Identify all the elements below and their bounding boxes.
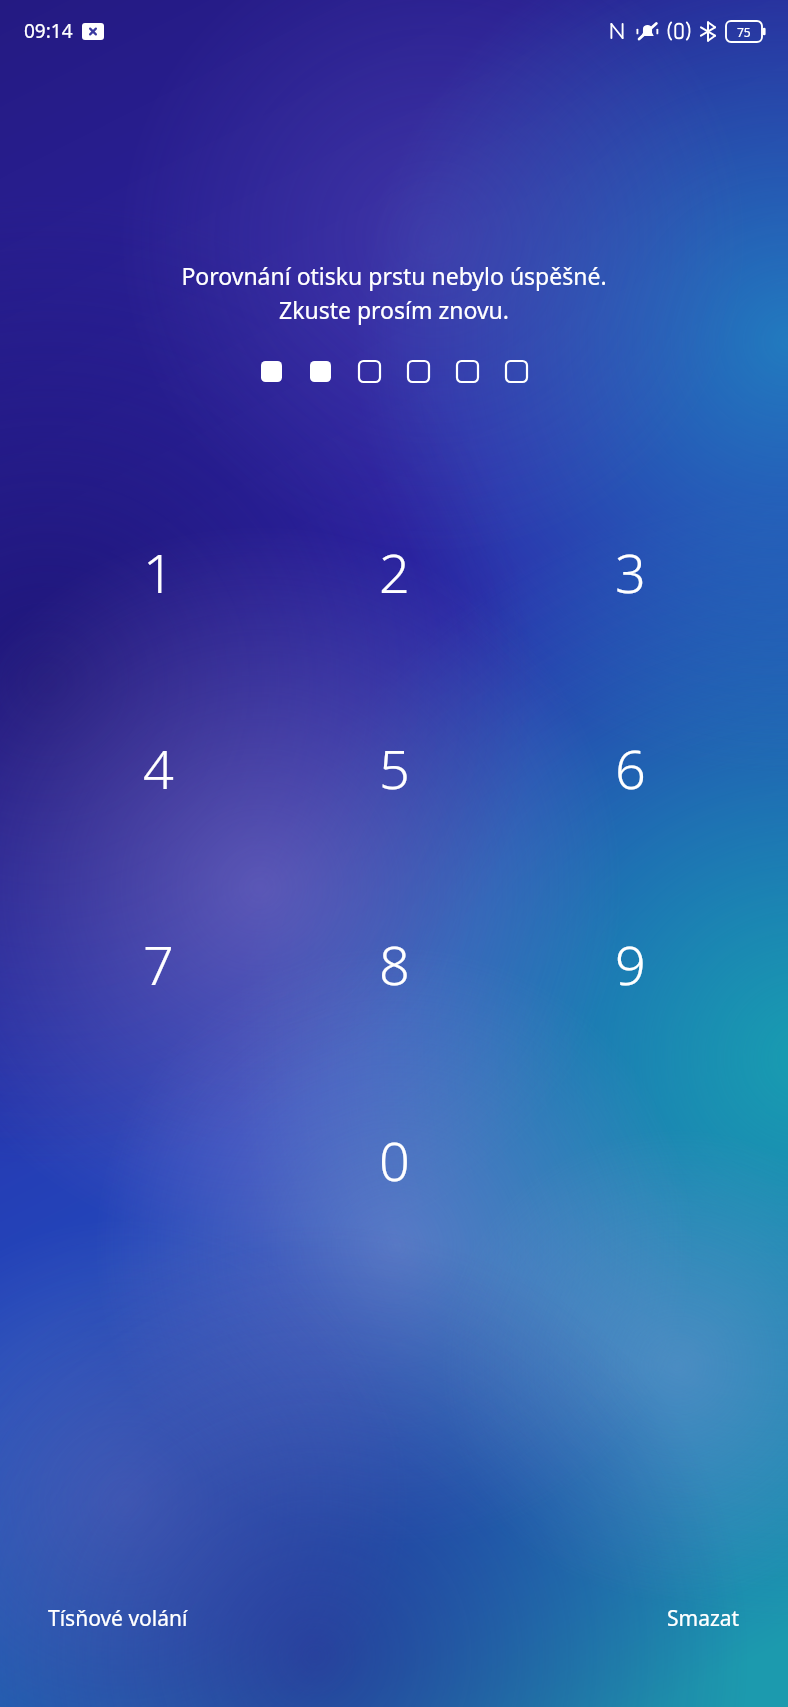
staticText: 09:14 (24, 18, 73, 44)
staticText: 6 (615, 731, 646, 805)
button[interactable]: Smazat (653, 1594, 754, 1643)
button[interactable]: 1 (40, 474, 276, 670)
staticText: 8 (379, 927, 410, 1001)
staticText: 0 (379, 1123, 410, 1197)
staticText: 1 (143, 535, 174, 609)
button[interactable]: 8 (276, 866, 512, 1062)
staticText: 9 (615, 927, 646, 1001)
button[interactable]: 3 (512, 474, 748, 670)
button[interactable]: 2 (276, 474, 512, 670)
staticText: 75 (737, 24, 751, 40)
button[interactable]: Tísňové volání (34, 1594, 202, 1643)
button[interactable]: 6 (512, 670, 748, 866)
button[interactable]: 0 (276, 1062, 512, 1258)
staticText: 2 (379, 535, 410, 609)
staticText: Tísňové volání (48, 1604, 188, 1633)
staticText: 4 (143, 731, 174, 805)
staticText: 7 (143, 927, 174, 1001)
button[interactable]: 4 (40, 670, 276, 866)
staticText: Porovnání otisku prstu nebylo úspěšné. Z… (181, 260, 607, 325)
staticText: 3 (615, 535, 646, 609)
button[interactable]: 7 (40, 866, 276, 1062)
button[interactable]: 9 (512, 866, 748, 1062)
button[interactable]: 5 (276, 670, 512, 866)
staticText: 5 (379, 731, 410, 805)
staticText: Smazat (667, 1604, 740, 1633)
